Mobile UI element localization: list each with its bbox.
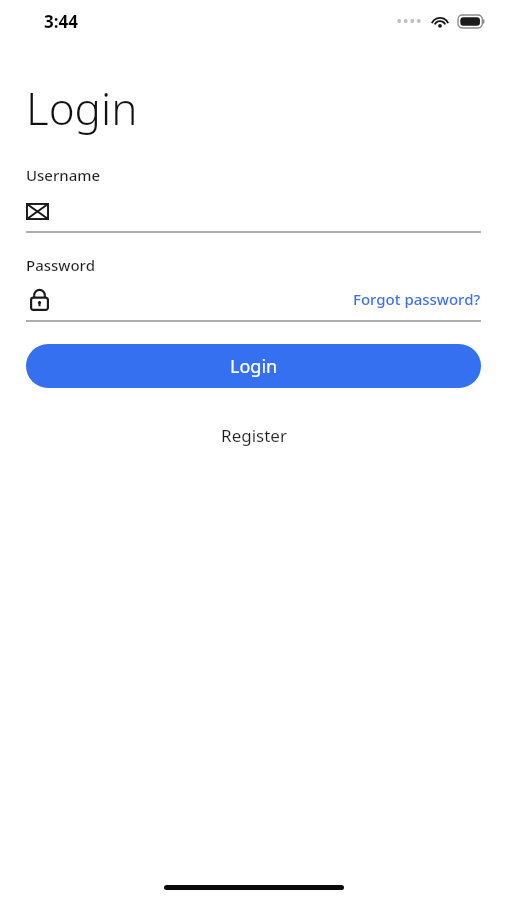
staticText: 3:44 xyxy=(44,10,78,33)
staticText: Login xyxy=(26,78,138,138)
button[interactable]: Password xyxy=(26,286,52,312)
staticText: Login xyxy=(230,354,278,379)
staticText: Username xyxy=(26,165,101,185)
staticText: Register xyxy=(221,424,287,447)
button[interactable]: Email xyxy=(26,199,481,223)
staticText: Password xyxy=(26,255,95,275)
button[interactable]: Login xyxy=(26,344,481,388)
other: Email xyxy=(26,203,49,220)
button[interactable]: Forgot password? xyxy=(353,289,481,309)
staticText: Forgot password? xyxy=(353,289,481,309)
button[interactable]: Register xyxy=(26,424,481,447)
